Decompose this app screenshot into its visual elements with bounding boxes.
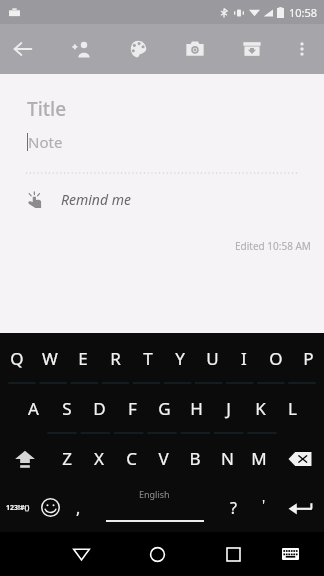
staticText: X bbox=[94, 447, 104, 470]
button[interactable]: H bbox=[180, 384, 212, 433]
button[interactable]: J bbox=[212, 384, 244, 433]
button[interactable]: Back bbox=[58, 532, 104, 576]
button[interactable]: R bbox=[99, 333, 132, 383]
button[interactable]: Emoji bbox=[36, 483, 64, 532]
staticText: V bbox=[158, 447, 169, 470]
staticText: D bbox=[93, 397, 106, 420]
button[interactable]: T bbox=[132, 333, 164, 383]
button[interactable]: More options bbox=[282, 29, 322, 69]
button[interactable]: L bbox=[276, 384, 308, 433]
staticText: 10:58 bbox=[289, 5, 318, 20]
button[interactable]: Add image bbox=[172, 26, 218, 72]
button[interactable]: E bbox=[66, 333, 99, 383]
staticText: Edited 10:58 AM bbox=[235, 239, 311, 253]
staticText: A bbox=[28, 397, 39, 420]
staticText: O bbox=[269, 347, 283, 370]
staticText: Q bbox=[10, 347, 24, 370]
staticText: Remind me bbox=[61, 190, 131, 209]
button[interactable]: S bbox=[50, 384, 83, 433]
staticText: R bbox=[110, 347, 121, 370]
button[interactable]: Note bbox=[0, 132, 324, 152]
button[interactable]: 123!#() bbox=[0, 483, 36, 532]
button[interactable]: Space bbox=[92, 483, 217, 532]
staticText: U bbox=[206, 347, 219, 370]
button[interactable]: M bbox=[243, 434, 275, 483]
button[interactable]: Recent apps bbox=[210, 532, 256, 576]
staticText: B bbox=[189, 447, 201, 470]
button[interactable]: Change colour bbox=[115, 26, 161, 72]
button[interactable]: Switch keyboard bbox=[267, 532, 313, 576]
staticText: C bbox=[126, 447, 137, 470]
button[interactable]: Remind me bbox=[0, 186, 145, 213]
button[interactable]: Q bbox=[0, 333, 33, 383]
staticText: E bbox=[78, 347, 88, 370]
button[interactable]: Y bbox=[164, 333, 196, 383]
staticText: S bbox=[62, 397, 72, 420]
button[interactable]: O bbox=[260, 333, 292, 383]
button[interactable]: A bbox=[17, 384, 50, 433]
button[interactable]: N bbox=[211, 434, 243, 483]
button[interactable]: Title bbox=[0, 96, 324, 122]
button[interactable]: , bbox=[64, 483, 92, 532]
button[interactable]: W bbox=[33, 333, 66, 383]
staticText: J bbox=[226, 397, 231, 420]
button[interactable]: Home bbox=[134, 532, 180, 576]
staticText: English bbox=[139, 488, 170, 500]
staticText: , bbox=[76, 497, 81, 519]
staticText: G bbox=[158, 397, 171, 420]
staticText: L bbox=[288, 397, 297, 420]
staticText: H bbox=[190, 397, 203, 420]
button[interactable]: Enter bbox=[278, 483, 324, 532]
button[interactable]: I bbox=[228, 333, 260, 383]
button[interactable]: Shift bbox=[0, 434, 50, 483]
staticText: Z bbox=[62, 447, 72, 470]
button[interactable]: D bbox=[83, 384, 116, 433]
button[interactable]: Z bbox=[50, 434, 83, 483]
staticText: F bbox=[128, 397, 137, 420]
button[interactable]: C bbox=[115, 434, 147, 483]
button[interactable]: F bbox=[116, 384, 148, 433]
button[interactable]: Delete bbox=[275, 434, 324, 483]
button[interactable]: G bbox=[148, 384, 180, 433]
staticText: P bbox=[303, 347, 314, 370]
button[interactable]: K bbox=[244, 384, 276, 433]
staticText: Note bbox=[28, 132, 63, 152]
staticText: K bbox=[255, 397, 266, 420]
button[interactable]: ' bbox=[249, 483, 278, 532]
button[interactable]: Add collaborator bbox=[58, 26, 104, 72]
staticText: N bbox=[221, 447, 234, 470]
staticText: ? bbox=[230, 497, 237, 519]
staticText: Title bbox=[27, 96, 67, 122]
button[interactable]: Back bbox=[0, 26, 46, 72]
staticText: T bbox=[143, 347, 153, 370]
button[interactable]: ? bbox=[217, 483, 249, 532]
button[interactable]: V bbox=[147, 434, 179, 483]
staticText: ' bbox=[262, 495, 266, 514]
button[interactable]: U bbox=[196, 333, 228, 383]
button[interactable]: X bbox=[83, 434, 115, 483]
button[interactable]: B bbox=[179, 434, 211, 483]
button[interactable]: P bbox=[292, 333, 324, 383]
staticText: Y bbox=[175, 347, 185, 370]
button[interactable]: Archive bbox=[229, 26, 275, 72]
staticText: 123!#() bbox=[6, 503, 30, 513]
staticText: W bbox=[42, 347, 58, 370]
staticText: I bbox=[241, 347, 247, 370]
staticText: M bbox=[251, 447, 267, 470]
